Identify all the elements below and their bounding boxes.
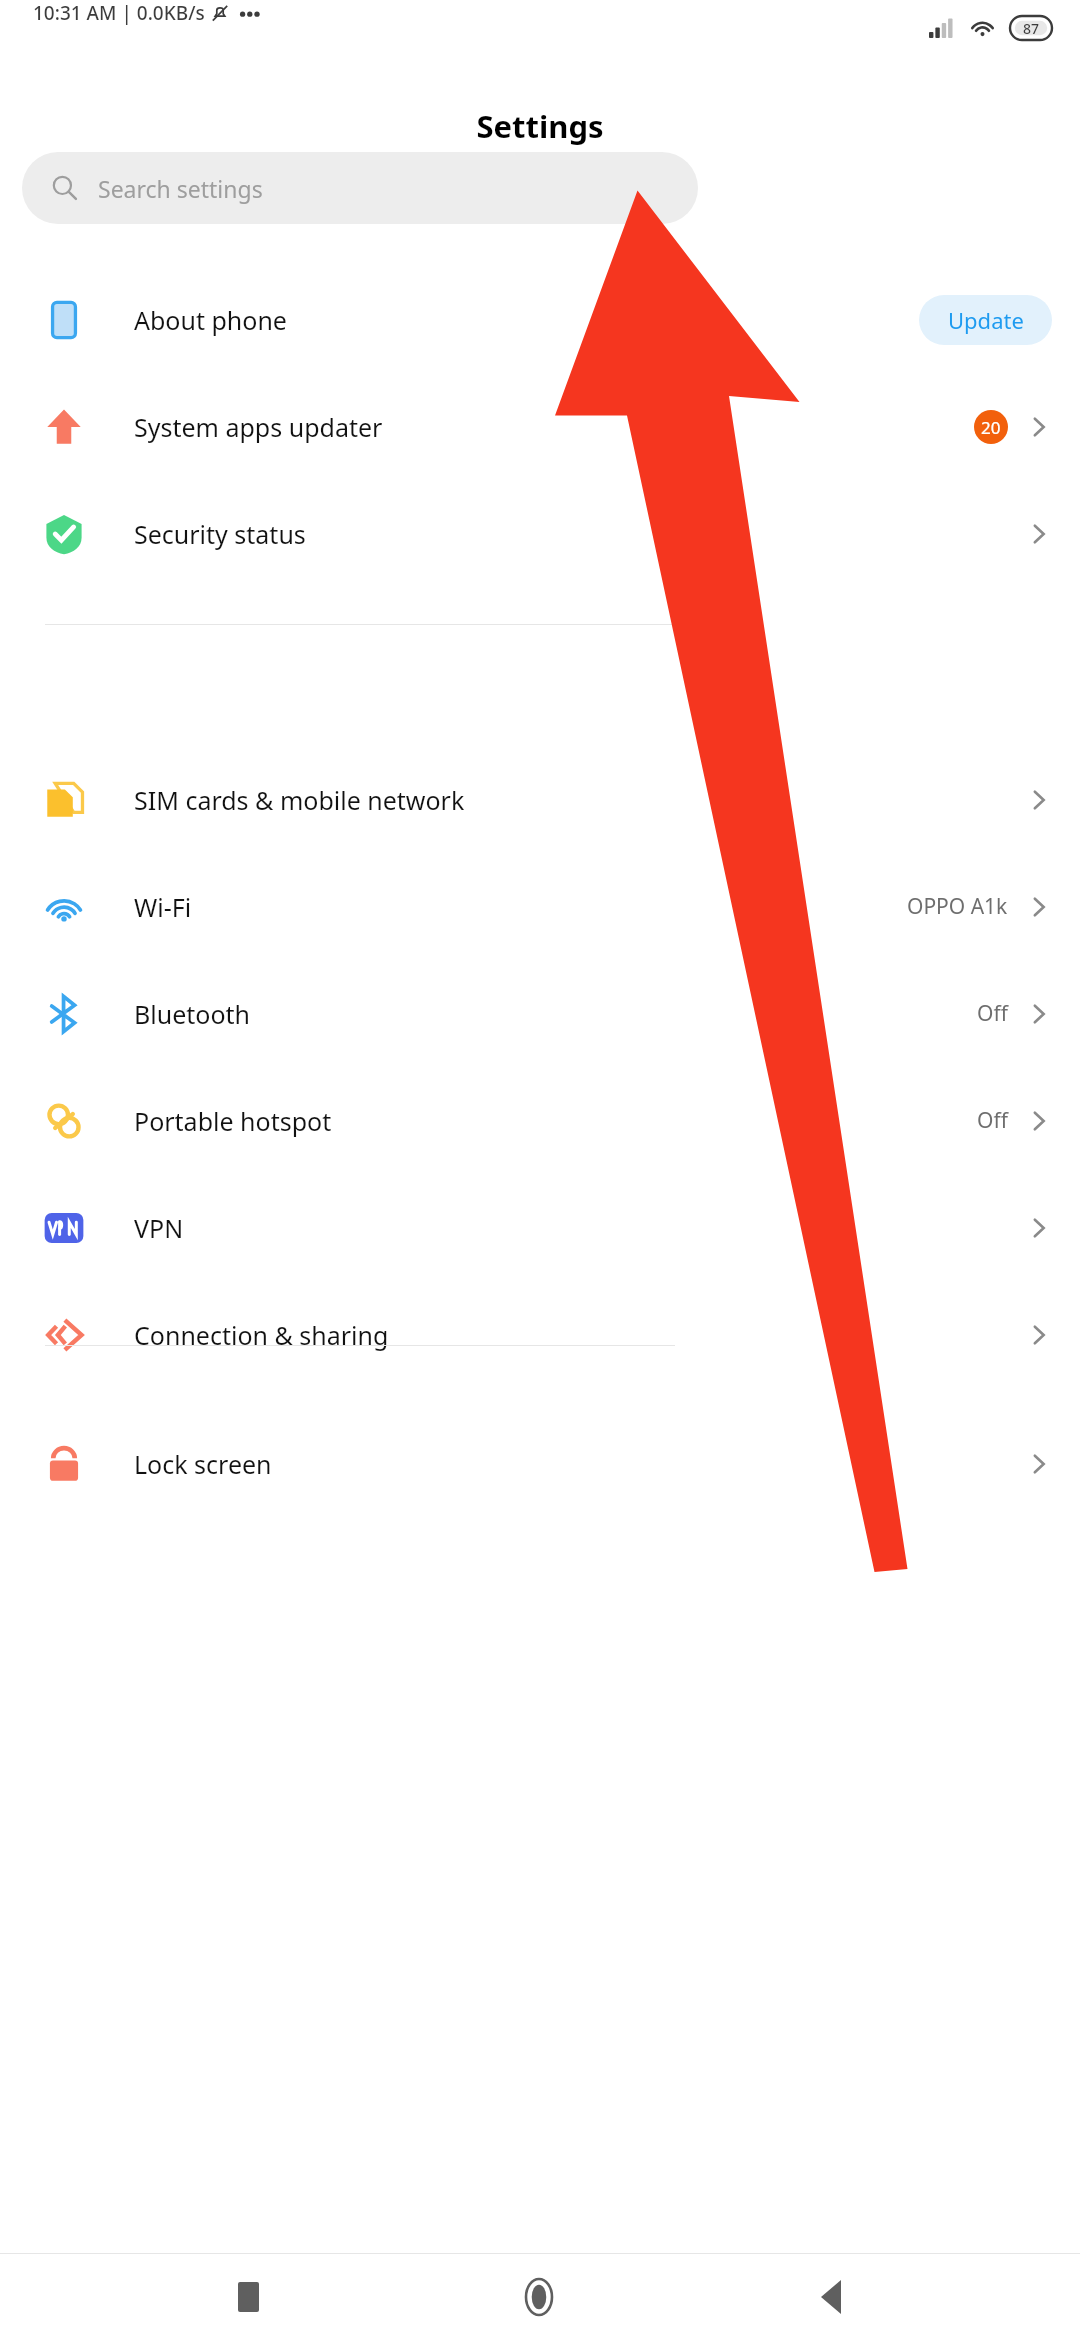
staticText: Portable hotspot — [134, 1104, 332, 1138]
staticText: 10:31 AM | 0.0KB/s — [33, 0, 205, 26]
staticText: Search settings — [98, 173, 263, 204]
staticText: About phone — [134, 303, 287, 337]
staticText: OPPO A1k — [907, 892, 1008, 921]
button[interactable]: Lock screen — [0, 1410, 1080, 1517]
staticText: Wi-Fi — [134, 890, 192, 924]
staticText: Off — [977, 999, 1008, 1028]
staticText: 20 — [981, 416, 1001, 439]
button[interactable]: Bluetooth — [0, 960, 1080, 1067]
staticText: SIM cards & mobile network — [134, 783, 465, 817]
button[interactable]: Home — [496, 2254, 582, 2340]
button[interactable]: VPN — [0, 1174, 1080, 1281]
staticText: Connection & sharing — [134, 1318, 389, 1352]
button[interactable]: Connection & sharing — [0, 1281, 1080, 1388]
staticText: Update — [948, 305, 1024, 335]
button[interactable]: Search settings — [22, 152, 698, 224]
button[interactable]: Portable hotspot — [0, 1067, 1080, 1174]
button[interactable]: Recent apps — [205, 2254, 291, 2340]
button[interactable]: Security status — [0, 480, 1080, 587]
button[interactable]: Wi-Fi — [0, 853, 1080, 960]
staticText: 87 — [1023, 19, 1040, 38]
button[interactable]: SIM cards & mobile network — [0, 746, 1080, 853]
staticText: System apps updater — [134, 410, 383, 444]
button[interactable]: Back — [788, 2254, 874, 2340]
button[interactable]: System apps updater — [0, 373, 1080, 480]
staticText: Off — [977, 1106, 1008, 1135]
staticText: Bluetooth — [134, 997, 251, 1031]
button[interactable]: About phone — [0, 266, 1080, 373]
staticText: Lock screen — [134, 1447, 272, 1481]
button[interactable]: Update — [919, 295, 1052, 345]
staticText: VPN — [134, 1211, 184, 1245]
staticText: Security status — [134, 517, 306, 551]
staticText: Settings — [0, 105, 1080, 147]
